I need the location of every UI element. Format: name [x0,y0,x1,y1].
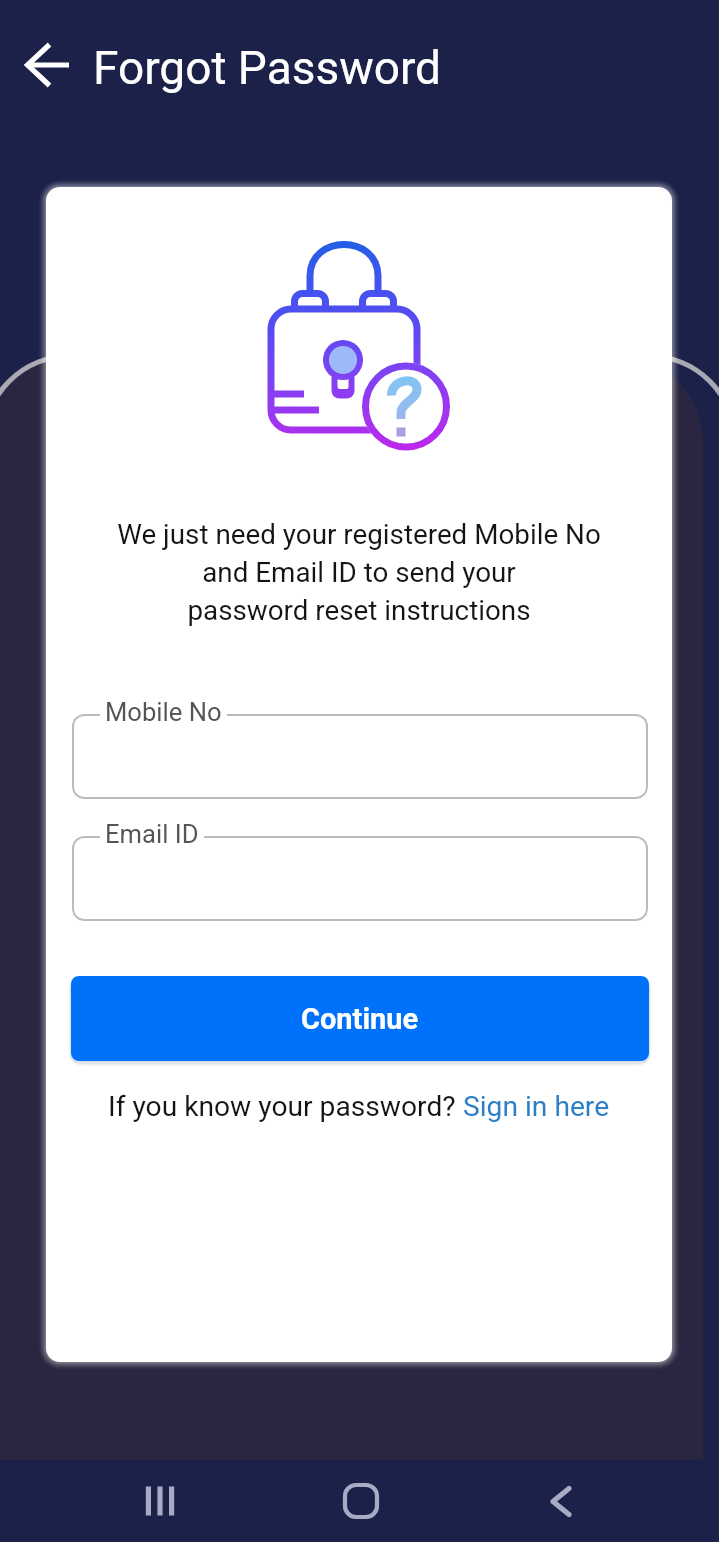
staticText: Mobile No [105,697,222,727]
staticText: Sign in here [463,1090,610,1123]
staticText: Email ID [105,819,199,849]
staticText: Forgot Password [93,41,442,95]
button[interactable]: Recent apps [116,1461,204,1541]
staticText: We just need your registered Mobile No a… [46,518,672,627]
staticText: Continue [301,1002,419,1036]
button[interactable] [72,836,648,921]
button[interactable]: Sign in here [463,1090,610,1123]
button[interactable]: Continue [71,976,649,1061]
button[interactable]: Back [13,30,83,100]
button[interactable] [72,714,648,799]
button[interactable]: Home [317,1461,405,1541]
button[interactable]: Back [518,1461,606,1541]
staticText: If you know your password? [108,1090,463,1123]
